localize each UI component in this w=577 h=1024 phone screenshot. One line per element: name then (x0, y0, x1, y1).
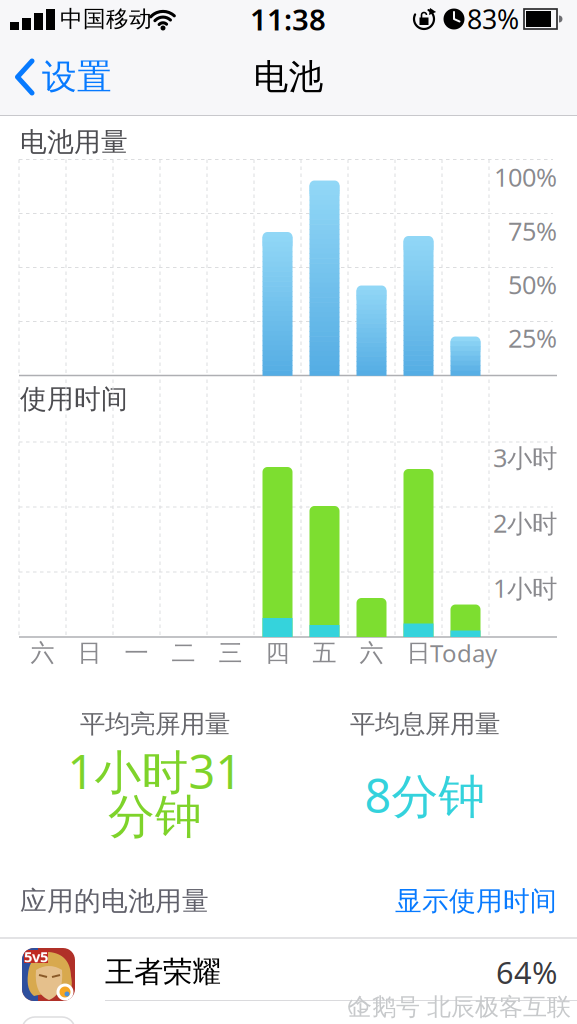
staticText: 1小时31 (67, 740, 242, 802)
staticText: 中国移动 (60, 5, 152, 33)
staticText: 分钟 (108, 788, 202, 846)
staticText: 设置 (42, 56, 112, 98)
button[interactable]: 5v5 (0, 939, 577, 1001)
staticText: 3小时 (493, 441, 557, 474)
staticText: 五 (312, 638, 336, 668)
staticText: 企鹅号 北辰极客互联 (348, 992, 571, 1022)
staticText: 100% (494, 160, 557, 194)
staticText: 四 (265, 638, 289, 668)
staticText: 平均亮屏用量 (80, 708, 230, 739)
staticText: 王者荣耀 (105, 954, 221, 990)
staticText: 使用时间 (20, 383, 128, 415)
staticText: 三 (218, 638, 242, 668)
staticText: 平均息屏用量 (350, 708, 500, 739)
staticText: 日 (77, 638, 101, 668)
staticText: 75% (508, 214, 557, 248)
button[interactable]: 返回设置 (0, 47, 170, 107)
staticText: 11:38 (250, 0, 326, 38)
staticText: 25% (508, 321, 557, 355)
staticText: 50% (508, 268, 557, 301)
staticText: 83% (467, 1, 519, 37)
staticText: 显示使用时间 (395, 885, 557, 917)
staticText: 六 (359, 638, 383, 668)
staticText: 1小时 (493, 571, 557, 605)
staticText: 电池 (253, 56, 323, 98)
staticText: 六 (30, 638, 54, 668)
staticText: 应用的电池用量 (20, 885, 209, 917)
staticText: 日 (406, 638, 430, 668)
staticText: 电池用量 (20, 126, 128, 158)
button[interactable]: 显示使用时间 (337, 885, 557, 917)
staticText: 一 (124, 638, 148, 668)
staticText: 2小时 (493, 506, 557, 540)
staticText: 5v5 (24, 947, 48, 966)
staticText: 64% (496, 952, 557, 992)
staticText: 8分钟 (364, 764, 485, 826)
staticText: 二 (171, 638, 195, 668)
staticText: Today (430, 637, 497, 669)
